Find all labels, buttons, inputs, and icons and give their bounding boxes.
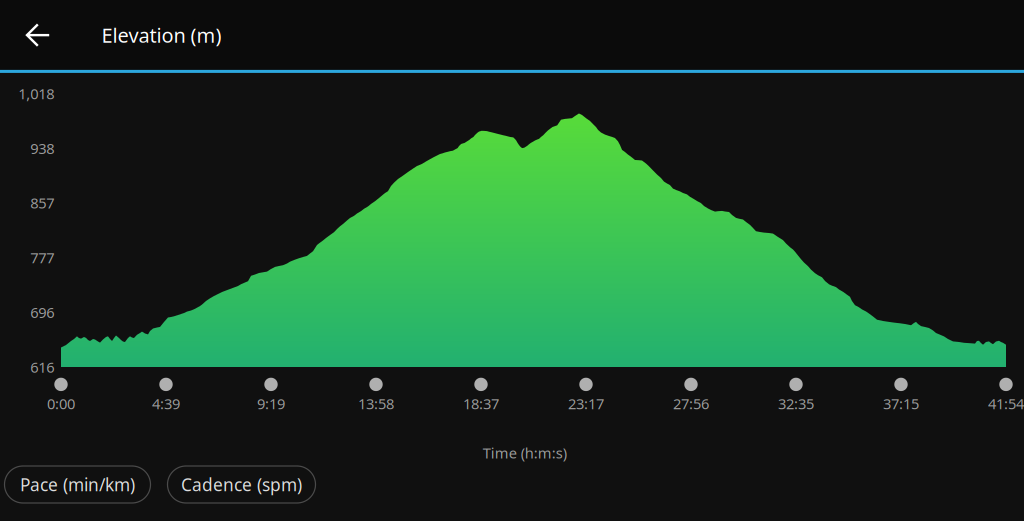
staticText: Elevation (m): [102, 22, 222, 48]
staticText: 857: [30, 193, 54, 213]
staticText: 32:35: [778, 394, 814, 413]
staticText: 13:58: [358, 394, 394, 413]
staticText: 9:19: [257, 394, 285, 413]
staticText: 0:00: [47, 394, 75, 413]
staticText: 27:56: [673, 394, 709, 413]
staticText: 938: [30, 138, 54, 158]
button[interactable]: Back: [12, 9, 64, 61]
staticText: 4:39: [152, 394, 180, 413]
staticText: 616: [30, 357, 54, 377]
staticText: Pace (min/km): [20, 473, 135, 496]
staticText: Time (h:m:s): [483, 443, 567, 462]
button[interactable]: Pace (min/km): [4, 466, 150, 503]
staticText: 41:54: [988, 394, 1024, 413]
staticText: 1,018: [18, 84, 54, 103]
staticText: 18:37: [463, 394, 499, 413]
staticText: 696: [30, 303, 54, 322]
staticText: 37:15: [883, 394, 919, 413]
staticText: 23:17: [568, 394, 604, 413]
staticText: 777: [30, 248, 54, 267]
button[interactable]: Cadence (spm): [167, 466, 315, 503]
staticText: Cadence (spm): [181, 473, 302, 496]
